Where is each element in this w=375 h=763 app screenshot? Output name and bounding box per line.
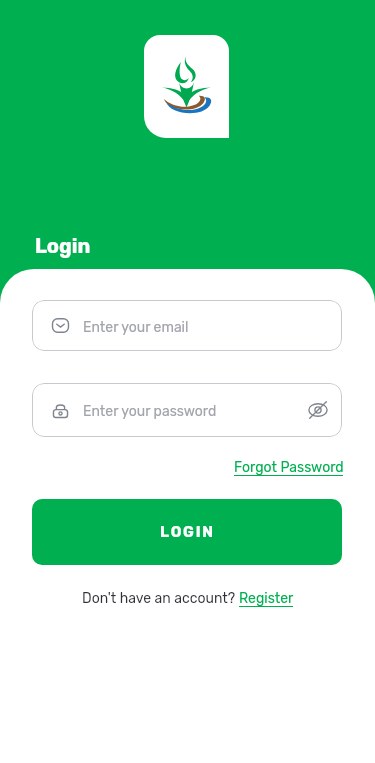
staticText: Enter your password [83, 403, 217, 420]
staticText: Enter your email [83, 319, 189, 336]
staticText: Register [239, 590, 294, 607]
staticText: Don't have an account? [82, 590, 239, 607]
button[interactable]: Enter your email [32, 300, 342, 351]
staticText: Forgot Password [234, 459, 344, 476]
button[interactable]: Forgot Password [234, 459, 344, 477]
button[interactable]: Enter your password [32, 383, 342, 437]
button[interactable]: Register [239, 590, 294, 608]
button[interactable]: LOGIN [32, 499, 342, 565]
button[interactable]: Show password [308, 400, 328, 420]
staticText: Login [35, 234, 91, 258]
staticText: LOGIN [160, 523, 215, 541]
